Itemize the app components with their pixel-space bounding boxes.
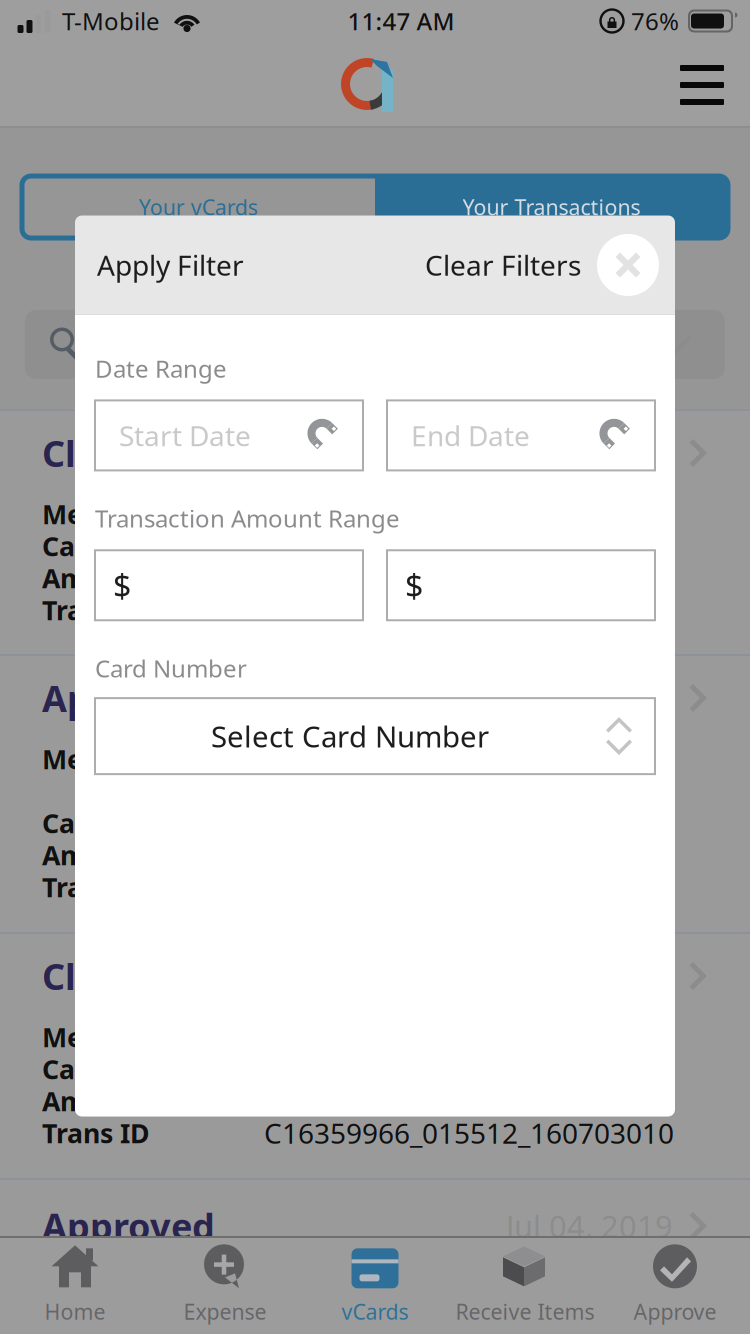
staticText: Jul 10, 2019 — [506, 433, 673, 473]
staticText: Jul 04, 2019 — [506, 1205, 673, 1246]
button[interactable]: Start Date — [95, 400, 363, 470]
staticText: $755.10 — [264, 1082, 368, 1120]
button[interactable]: Receive Items — [450, 1237, 600, 1333]
staticText: Receive Items — [455, 1297, 594, 1326]
staticText: Transaction Amount Range — [95, 502, 400, 534]
staticText: Home — [44, 1297, 105, 1326]
button[interactable]: $ — [387, 550, 655, 620]
button[interactable]: $ — [95, 550, 363, 620]
staticText: Card # — [42, 805, 127, 841]
button[interactable]: Approve — [600, 1237, 750, 1333]
staticText: Cleared — [42, 952, 178, 1000]
staticText: $ — [405, 564, 423, 606]
staticText: Expense — [183, 1297, 266, 1326]
staticText: vCards — [341, 1297, 408, 1326]
staticText: Cleared — [42, 429, 178, 477]
staticText: Merchant — [42, 496, 170, 532]
staticText: $128.95 — [264, 559, 368, 597]
staticText: 76% — [631, 5, 679, 37]
staticText: Approved — [42, 1202, 215, 1250]
staticText: Card # — [42, 1051, 127, 1087]
button[interactable]: End Date — [387, 400, 655, 470]
staticText: Your Transactions — [462, 193, 640, 221]
staticText: Apply Filter — [97, 246, 244, 284]
staticText: Amount — [42, 1083, 149, 1119]
staticText: Amount — [42, 837, 149, 873]
staticText: Merchant — [42, 741, 170, 777]
staticText: Jul 08, 2019 — [506, 678, 673, 718]
staticText: Trans ID — [42, 1115, 150, 1151]
button[interactable]: Select Card Number — [95, 698, 655, 774]
staticText: C16359966_015512_160703010 — [264, 1114, 674, 1152]
staticText: Start Date — [119, 417, 251, 454]
staticText: C16359966_015512_160703010 — [264, 591, 674, 629]
staticText: T-Mobile — [62, 5, 160, 37]
staticText: Select Card Number — [211, 717, 489, 756]
staticText: 11:47 AM — [347, 5, 454, 37]
button[interactable]: Home — [0, 1237, 150, 1333]
staticText: Date Range — [95, 352, 227, 384]
staticText: Amount — [42, 560, 149, 596]
button[interactable]: Clear Filters — [425, 224, 581, 306]
staticText: Clear Filters — [425, 246, 581, 284]
staticText: NEW YORK — [264, 772, 405, 810]
staticText: End Date — [411, 417, 530, 454]
button[interactable]: Expense — [150, 1237, 300, 1333]
button[interactable]: vCards — [300, 1237, 450, 1333]
staticText: ****3020 — [264, 527, 388, 565]
staticText: AMZN Mktp US*M08QZ3TA1 — [264, 495, 634, 533]
staticText: SQ *JOE COFFEE CO/ — [264, 740, 533, 778]
button[interactable]: Apply Filter — [75, 224, 244, 306]
staticText: Trans ID — [42, 869, 150, 905]
staticText: Trans ID — [42, 592, 150, 628]
button[interactable]: Close — [581, 215, 675, 314]
button[interactable]: Menu — [654, 42, 750, 128]
button[interactable]: Your vCards — [22, 176, 375, 238]
staticText: Approve — [633, 1297, 716, 1326]
staticText: Merchant — [42, 1019, 170, 1055]
button[interactable]: Your Transactions — [375, 176, 728, 238]
staticText: Card Number — [95, 652, 247, 684]
staticText: Your vCards — [139, 193, 258, 221]
staticText: Approved — [42, 674, 215, 722]
staticText: $ — [113, 564, 131, 606]
staticText: Card # — [42, 528, 127, 564]
